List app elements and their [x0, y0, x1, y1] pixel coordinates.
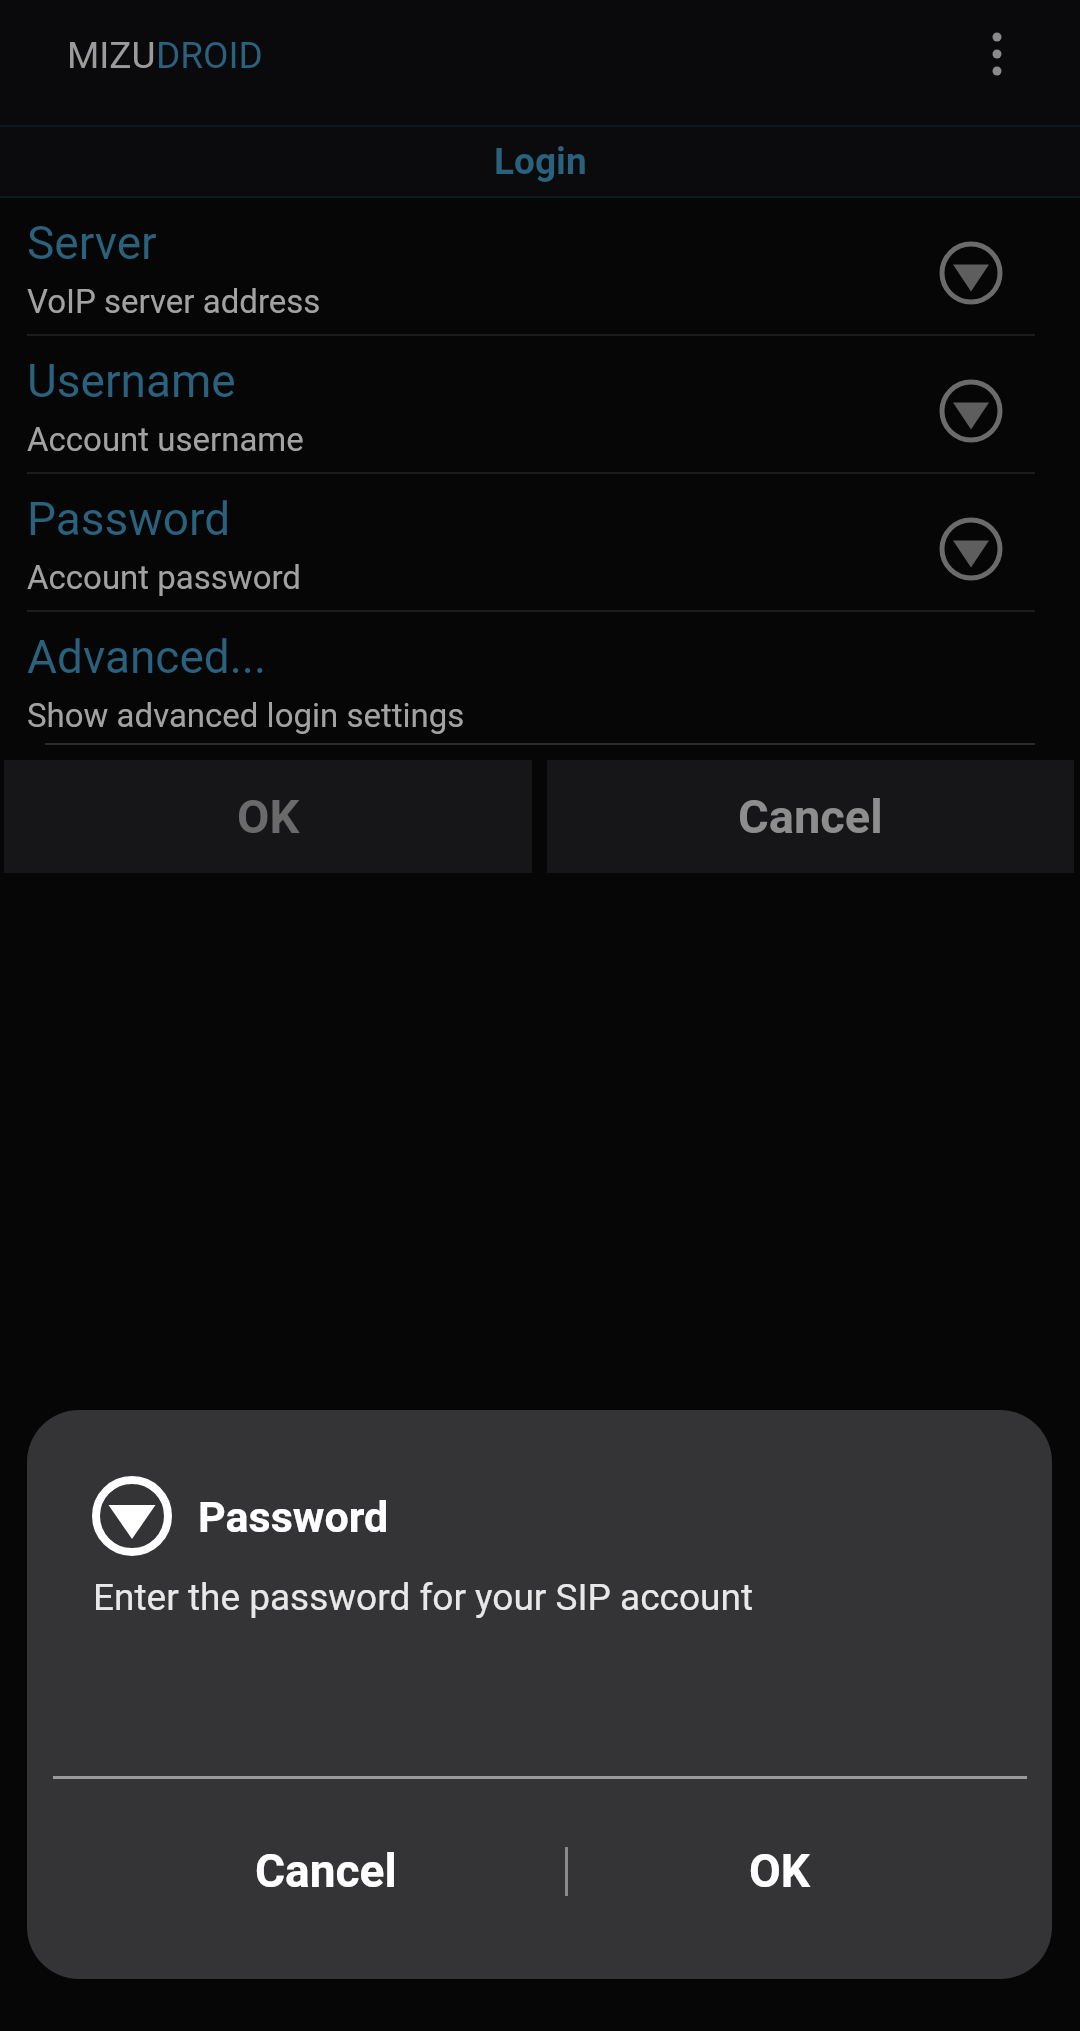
staticText: Account username: [27, 420, 304, 459]
staticText: Account password: [27, 558, 301, 597]
button[interactable]: OK: [4, 760, 532, 873]
staticText: Login: [494, 140, 587, 183]
staticText: Server: [27, 216, 157, 270]
staticText: OK: [237, 789, 300, 844]
staticText: Password: [198, 1492, 389, 1542]
button[interactable]: [0, 614, 1080, 752]
staticText: Username: [27, 354, 236, 408]
button[interactable]: [0, 338, 1080, 476]
staticText: MIZU: [67, 34, 156, 77]
button[interactable]: [967, 14, 1027, 100]
button[interactable]: Cancel: [113, 1815, 539, 1927]
staticText: Enter the password for your SIP account: [93, 1576, 754, 1619]
staticText: Advanced...: [27, 630, 267, 684]
staticText: Cancel: [255, 1844, 397, 1898]
staticText: Password: [27, 492, 231, 546]
button[interactable]: [0, 476, 1080, 614]
staticText: OK: [749, 1844, 810, 1898]
button[interactable]: [0, 200, 1080, 338]
staticText: VoIP server address: [27, 282, 321, 321]
staticText: Cancel: [738, 789, 883, 844]
button[interactable]: OK: [566, 1815, 992, 1927]
button[interactable]: Cancel: [547, 760, 1074, 873]
staticText: DROID: [156, 34, 263, 77]
staticText: Show advanced login settings: [27, 696, 465, 735]
